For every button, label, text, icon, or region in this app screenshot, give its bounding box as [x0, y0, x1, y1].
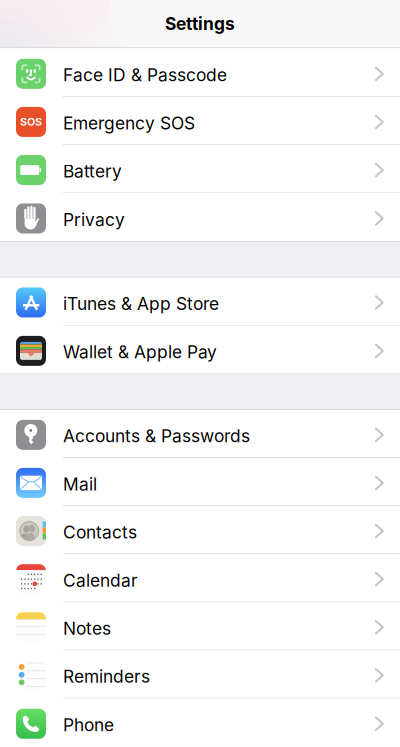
button[interactable]: Calendar: [0, 554, 400, 602]
button[interactable]: Privacy: [0, 193, 400, 241]
staticText: iTunes & App Store: [63, 293, 219, 314]
staticText: Mail: [63, 474, 97, 495]
button[interactable]: SOS: [0, 97, 400, 145]
button[interactable]: Notes: [0, 602, 400, 650]
button[interactable]: Phone: [0, 698, 400, 747]
button[interactable]: Accounts & Passwords: [0, 410, 400, 458]
staticText: Calendar: [63, 570, 138, 591]
staticText: Notes: [63, 618, 111, 639]
button[interactable]: iTunes & App Store: [0, 277, 400, 326]
staticText: Reminders: [63, 666, 150, 687]
button[interactable]: Mail: [0, 458, 400, 506]
button[interactable]: Contacts: [0, 506, 400, 554]
staticText: Battery: [63, 161, 122, 182]
staticText: Accounts & Passwords: [63, 426, 250, 447]
staticText: Emergency SOS: [63, 113, 195, 134]
button[interactable]: Battery: [0, 145, 400, 193]
staticText: SOS: [20, 115, 42, 128]
button[interactable]: Reminders: [0, 650, 400, 698]
staticText: Contacts: [63, 522, 137, 543]
staticText: Wallet & Apple Pay: [63, 342, 217, 363]
staticText: Settings: [165, 13, 235, 34]
button[interactable]: Wallet & Apple Pay: [0, 326, 400, 374]
staticText: Phone: [63, 714, 114, 735]
staticText: Face ID & Passcode: [63, 65, 227, 86]
button[interactable]: Face ID & Passcode: [0, 49, 400, 97]
staticText: Privacy: [63, 209, 125, 230]
